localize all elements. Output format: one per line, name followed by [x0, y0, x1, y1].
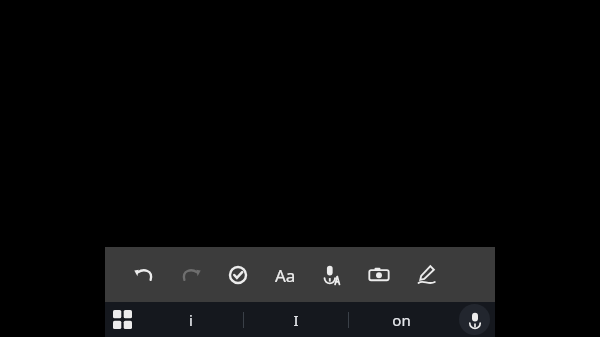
button[interactable]: Handwriting [407, 256, 445, 294]
button[interactable]: Voice input [453, 302, 495, 337]
button[interactable]: Spell check [219, 256, 257, 294]
button[interactable]: i [139, 302, 243, 337]
button[interactable]: on [349, 302, 453, 337]
button[interactable]: Camera [360, 256, 398, 294]
staticText: on [392, 310, 411, 330]
staticText: i [189, 310, 193, 330]
staticText: Aa [275, 264, 296, 286]
staticText: I [293, 310, 299, 330]
button[interactable]: Voice typing language [313, 256, 351, 294]
button[interactable]: Redo [172, 256, 210, 294]
button[interactable]: Undo [125, 256, 163, 294]
button[interactable]: Keyboard options [105, 302, 139, 337]
button[interactable]: Text formatting [266, 256, 304, 294]
button[interactable]: I [244, 302, 348, 337]
